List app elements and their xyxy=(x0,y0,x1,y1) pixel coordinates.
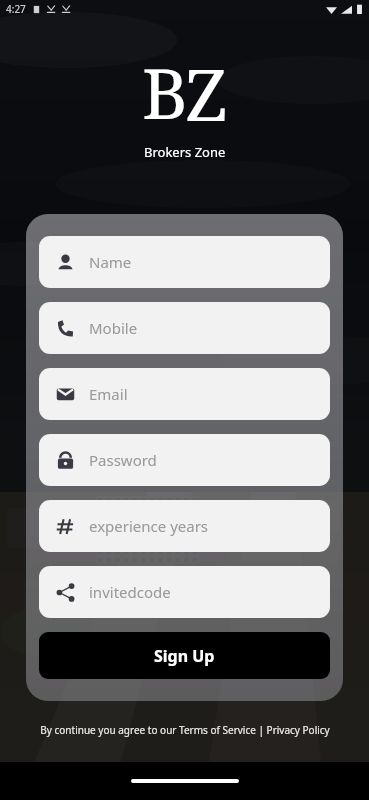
other: experience years xyxy=(56,517,75,536)
button[interactable]: Email xyxy=(39,368,330,420)
staticText: experience years xyxy=(89,516,209,536)
other: invitedcode xyxy=(56,583,75,602)
other: Password xyxy=(56,451,75,470)
button[interactable]: Mobile xyxy=(39,302,330,354)
other: Mobile xyxy=(56,319,75,338)
other: Name xyxy=(56,253,75,272)
button[interactable]: By continue you agree to our Terms of Se… xyxy=(40,723,330,737)
button[interactable]: Password xyxy=(39,434,330,486)
button[interactable]: invitedcode xyxy=(39,566,330,618)
staticText: Sign Up xyxy=(154,645,215,667)
staticText: invitedcode xyxy=(89,582,171,602)
button[interactable]: Name xyxy=(39,236,330,288)
staticText: Brokers Zone xyxy=(144,143,226,161)
other: Email xyxy=(56,385,75,404)
staticText: 4:27 xyxy=(6,2,26,16)
button[interactable]: Sign Up xyxy=(39,632,330,679)
staticText: Name xyxy=(89,252,132,272)
staticText: B xyxy=(142,44,188,139)
staticText: Z xyxy=(185,44,228,139)
staticText: Mobile xyxy=(89,318,138,338)
button[interactable]: experience years xyxy=(39,500,330,552)
staticText: Email xyxy=(89,384,128,404)
staticText: Password xyxy=(89,450,157,470)
